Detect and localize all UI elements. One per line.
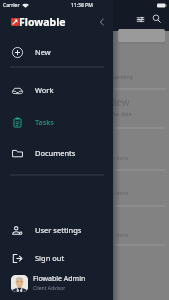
staticText: Flowable — [19, 15, 66, 29]
button[interactable]: Search — [149, 11, 164, 26]
button[interactable]: Tasks — [0, 108, 113, 136]
button[interactable]: Close navigation drawer — [94, 14, 110, 30]
staticText: request pending — [94, 74, 133, 81]
button[interactable]: Sign out — [0, 244, 113, 272]
button[interactable]: Flowable Admin — [11, 274, 113, 292]
button[interactable]: New — [0, 38, 113, 66]
staticText: Client Advisor — [33, 285, 66, 292]
staticText: Work — [35, 85, 54, 95]
button[interactable]: Work — [0, 76, 113, 104]
staticText: ends due date — [98, 111, 132, 118]
staticText: Flowable Admin — [33, 274, 86, 284]
staticText: User settings — [35, 225, 82, 235]
button[interactable]: Documents — [0, 139, 113, 167]
staticText: New — [35, 47, 51, 57]
button[interactable]: Filter — [133, 12, 148, 27]
button[interactable]: User settings — [0, 216, 113, 244]
staticText: 11:38 PM — [71, 2, 93, 9]
staticText: status - done — [98, 190, 129, 197]
staticText: Tasks — [35, 117, 54, 127]
staticText: status - done — [98, 232, 129, 239]
button[interactable] — [118, 29, 165, 42]
staticText: Sign out — [35, 253, 65, 263]
staticText: status - done — [98, 155, 129, 162]
staticText: Documents — [35, 148, 76, 158]
staticText: Carrier — [3, 2, 20, 9]
staticText: Overview — [86, 95, 130, 109]
